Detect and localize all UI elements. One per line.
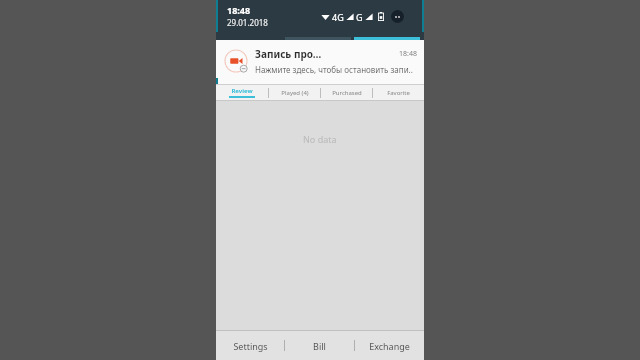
staticText: 18:48 <box>399 49 417 59</box>
button[interactable]: Review <box>216 85 268 100</box>
staticText: Played (4) <box>281 89 309 97</box>
button[interactable]: Settings <box>216 331 284 360</box>
staticText: Нажмите здесь, чтобы остановить запи.. <box>255 64 413 75</box>
button[interactable]: Favorite <box>373 85 424 100</box>
staticText: No data <box>303 133 337 145</box>
staticText: 4G <box>332 11 344 23</box>
staticText: 18:48 <box>227 4 251 16</box>
staticText: 29.01.2018 <box>227 17 268 28</box>
button[interactable]: Запись продолжается <box>216 40 424 82</box>
button[interactable]: Played (4) <box>269 85 320 100</box>
staticText: Запись продолжается <box>255 47 327 61</box>
button[interactable]: Purchased <box>321 85 372 100</box>
button[interactable]: Bill <box>285 331 354 360</box>
staticText: Exchange <box>369 340 410 352</box>
staticText: Bill <box>313 340 326 352</box>
staticText: Settings <box>233 340 268 352</box>
button[interactable]: Exchange <box>355 331 424 360</box>
staticText: Favorite <box>387 89 410 97</box>
staticText: G <box>356 11 363 23</box>
staticText: Purchased <box>332 89 362 97</box>
button[interactable]: More <box>391 10 404 23</box>
staticText: Review <box>231 87 253 95</box>
